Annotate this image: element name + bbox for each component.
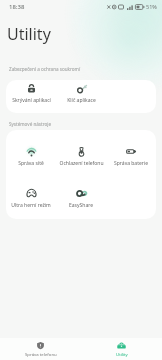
staticText: Správa baterie [114, 160, 148, 167]
staticText: Skrývání aplikací [12, 97, 51, 104]
staticText: Systémové nástroje [9, 121, 52, 127]
button[interactable]: EasyShare [56, 174, 106, 209]
button[interactable]: Ochlazení telefonu [56, 130, 106, 167]
staticText: 51% [146, 3, 157, 10]
staticText: Utility [116, 351, 128, 357]
staticText: Ochlazení telefonu [59, 160, 104, 167]
staticText: 18:38 [9, 3, 25, 11]
button[interactable]: Skrývání aplikací [6, 80, 56, 104]
button[interactable]: Utility [81, 338, 162, 360]
staticText: EasyShare [69, 202, 93, 209]
button[interactable]: Správa sítě [6, 130, 56, 167]
staticText: Správa sítě [18, 160, 44, 167]
staticText: Klíč aplikace [67, 97, 96, 104]
button[interactable]: Klíč aplikace [56, 80, 106, 104]
button[interactable]: Správa telefonu [0, 338, 81, 360]
staticText: Utility [7, 23, 51, 45]
button[interactable]: Ultra herní režim [6, 174, 56, 209]
button[interactable]: Správa baterie [106, 130, 156, 167]
staticText: Ultra herní režim [11, 202, 51, 209]
staticText: Zabezpečení a ochrana soukromí [9, 66, 81, 72]
staticText: Správa telefonu [25, 351, 57, 357]
